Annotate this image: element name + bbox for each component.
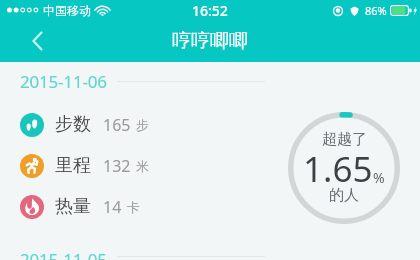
staticText: 2015-11-06 <box>20 70 107 93</box>
staticText: 86% <box>365 3 387 18</box>
staticText: 14 <box>103 196 122 218</box>
staticText: 步 <box>136 117 149 133</box>
staticText: 哼哼唧唧 <box>172 29 248 53</box>
button[interactable]: Back <box>17 21 57 61</box>
staticText: 1.65 <box>303 145 373 193</box>
staticText: 米 <box>136 158 149 174</box>
staticText: 的人 <box>329 186 359 205</box>
staticText: 步数 <box>55 113 91 136</box>
staticText: 卡 <box>127 199 140 215</box>
button[interactable]: 里程 <box>20 145 275 186</box>
staticText: 热量 <box>55 195 91 218</box>
staticText: 中国移动 <box>43 3 91 18</box>
button[interactable]: 热量 <box>20 186 275 227</box>
staticText: 132 <box>103 155 131 177</box>
staticText: 2015-11-05 <box>20 248 107 260</box>
button[interactable]: 步数 <box>20 104 275 145</box>
staticText: 里程 <box>55 154 91 177</box>
staticText: 165 <box>103 114 131 136</box>
staticText: % <box>373 168 385 187</box>
staticText: 超越了 <box>322 130 367 149</box>
staticText: 16:52 <box>192 1 228 20</box>
